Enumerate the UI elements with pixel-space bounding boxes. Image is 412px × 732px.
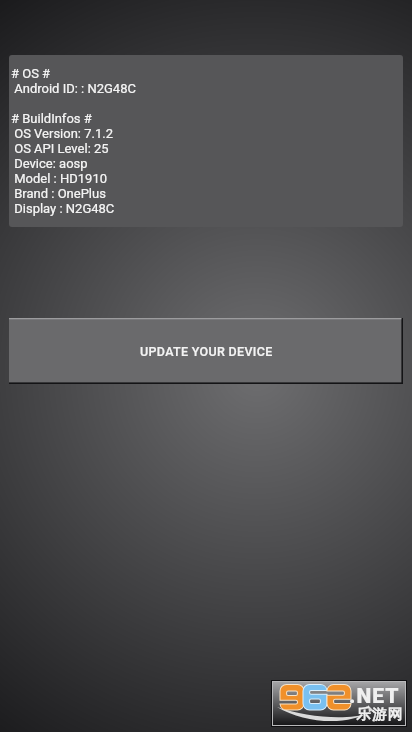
staticText: # OS # Android ID: : N2G48C # BuildInfos… [11, 66, 136, 216]
staticText: .NET [349, 684, 400, 709]
button[interactable]: UPDATE YOUR DEVICE [9, 318, 403, 384]
staticText: UPDATE YOUR DEVICE [140, 344, 273, 359]
staticText: 乐游网 [356, 705, 404, 723]
other: 962.NET watermark [271, 680, 407, 727]
